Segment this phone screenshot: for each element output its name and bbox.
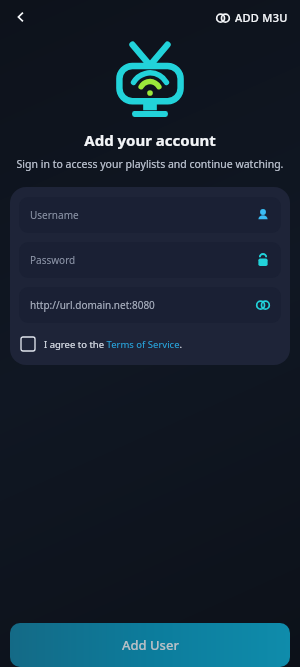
button[interactable]: http://url.domain.net:8080	[19, 287, 281, 323]
staticText: Sign in to access your playlists and con…	[12, 157, 288, 171]
staticText: Add User	[122, 636, 179, 654]
button[interactable]: I agree to the Terms of Service.	[19, 335, 281, 355]
button[interactable]: Add User	[10, 623, 290, 667]
button[interactable]: Username	[19, 197, 281, 233]
button[interactable]: Password	[19, 242, 281, 278]
staticText: Password	[30, 253, 76, 267]
staticText: I agree to the Terms of Service.	[44, 338, 183, 351]
staticText: Username	[30, 208, 79, 222]
button[interactable]: ADD M3U	[212, 6, 292, 29]
staticText: http://url.domain.net:8080	[30, 298, 155, 312]
staticText: Add your account	[0, 130, 300, 150]
button[interactable]: Back	[6, 2, 36, 32]
staticText: ADD M3U	[235, 10, 288, 25]
